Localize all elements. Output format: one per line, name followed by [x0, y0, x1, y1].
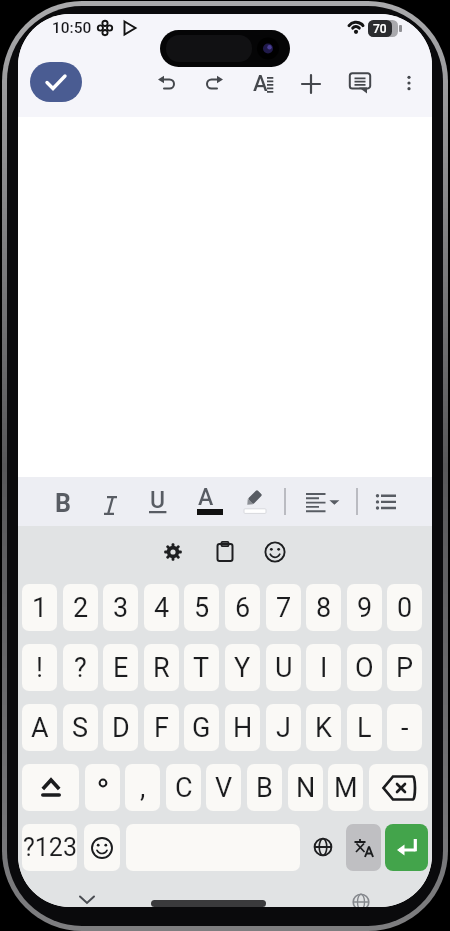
- staticText: Y: [234, 652, 251, 684]
- staticText: !: [36, 652, 43, 684]
- button[interactable]: N: [288, 764, 323, 811]
- staticText: K: [315, 712, 332, 744]
- staticText: H: [233, 712, 253, 744]
- staticText: T: [193, 652, 210, 684]
- button[interactable]: L: [347, 704, 382, 751]
- staticText: O: [355, 652, 374, 684]
- staticText: 4: [154, 592, 170, 624]
- staticText: -: [401, 712, 409, 744]
- button[interactable]: C: [166, 764, 201, 811]
- button[interactable]: [201, 71, 225, 95]
- button[interactable]: [103, 496, 118, 515]
- staticText: J: [276, 712, 291, 744]
- staticText: 3: [113, 592, 129, 624]
- button[interactable]: P: [387, 644, 422, 691]
- button[interactable]: [30, 62, 82, 102]
- button[interactable]: I: [306, 644, 341, 691]
- button[interactable]: !: [22, 644, 57, 691]
- button[interactable]: ?123: [22, 824, 77, 871]
- button[interactable]: [313, 837, 333, 857]
- button[interactable]: [85, 764, 120, 811]
- button[interactable]: [215, 541, 235, 563]
- staticText: R: [153, 652, 170, 684]
- staticText: 10:50: [52, 19, 92, 37]
- staticText: I: [320, 652, 328, 684]
- button[interactable]: [22, 764, 79, 811]
- staticText: ?123: [23, 833, 77, 862]
- button[interactable]: Y: [225, 644, 260, 691]
- button[interactable]: [264, 541, 286, 563]
- button[interactable]: 1: [22, 584, 57, 631]
- staticText: B: [256, 772, 273, 804]
- button[interactable]: A: [22, 704, 57, 751]
- button[interactable]: 5: [184, 584, 219, 631]
- button[interactable]: [252, 71, 276, 95]
- button[interactable]: [397, 71, 421, 95]
- button[interactable]: G: [184, 704, 219, 751]
- button[interactable]: B: [51, 489, 75, 513]
- button[interactable]: [374, 494, 398, 510]
- button[interactable]: J: [266, 704, 301, 751]
- button[interactable]: 2: [63, 584, 98, 631]
- button[interactable]: [79, 895, 95, 905]
- button[interactable]: O: [347, 644, 382, 691]
- staticText: G: [192, 712, 211, 744]
- button[interactable]: H: [225, 704, 260, 751]
- button[interactable]: [306, 493, 340, 513]
- staticText: 8: [316, 592, 332, 624]
- button[interactable]: A: [194, 484, 218, 508]
- button[interactable]: 8: [306, 584, 341, 631]
- button[interactable]: D: [103, 704, 138, 751]
- button[interactable]: [385, 824, 428, 871]
- button[interactable]: 9: [347, 584, 382, 631]
- staticText: A: [31, 712, 49, 744]
- staticText: U: [150, 487, 166, 511]
- button[interactable]: [242, 489, 268, 514]
- staticText: N: [296, 772, 316, 804]
- staticText: ,: [140, 772, 146, 804]
- button[interactable]: R: [144, 644, 179, 691]
- staticText: F: [154, 712, 169, 744]
- button[interactable]: [84, 824, 120, 871]
- button[interactable]: M: [328, 764, 363, 811]
- button[interactable]: U: [266, 644, 301, 691]
- button[interactable]: T: [184, 644, 219, 691]
- staticText: 70: [373, 22, 387, 36]
- button[interactable]: [348, 72, 372, 96]
- button[interactable]: U: [146, 487, 170, 511]
- staticText: U: [275, 652, 293, 684]
- button[interactable]: [352, 893, 370, 907]
- staticText: 1: [32, 592, 48, 624]
- staticText: P: [396, 652, 414, 684]
- staticText: 9: [357, 592, 373, 624]
- staticText: B: [55, 489, 71, 513]
- button[interactable]: [156, 71, 180, 95]
- button[interactable]: S: [63, 704, 98, 751]
- button[interactable]: [346, 824, 381, 871]
- button[interactable]: F: [144, 704, 179, 751]
- staticText: E: [113, 652, 129, 684]
- staticText: M: [334, 772, 358, 804]
- staticText: V: [215, 772, 233, 804]
- button[interactable]: 4: [144, 584, 179, 631]
- button[interactable]: [369, 764, 428, 811]
- staticText: ?: [74, 652, 87, 684]
- button[interactable]: 6: [225, 584, 260, 631]
- staticText: L: [357, 712, 372, 744]
- button[interactable]: B: [247, 764, 282, 811]
- button[interactable]: E: [103, 644, 138, 691]
- staticText: A: [198, 484, 214, 508]
- button[interactable]: ?: [63, 644, 98, 691]
- button[interactable]: ,: [125, 764, 160, 811]
- button[interactable]: V: [206, 764, 241, 811]
- staticText: 2: [73, 592, 89, 624]
- button[interactable]: 7: [266, 584, 301, 631]
- button[interactable]: [299, 72, 323, 96]
- staticText: C: [175, 772, 193, 804]
- button[interactable]: -: [387, 704, 422, 751]
- button[interactable]: 3: [103, 584, 138, 631]
- button[interactable]: K: [306, 704, 341, 751]
- button[interactable]: 0: [387, 584, 422, 631]
- button[interactable]: [163, 542, 183, 562]
